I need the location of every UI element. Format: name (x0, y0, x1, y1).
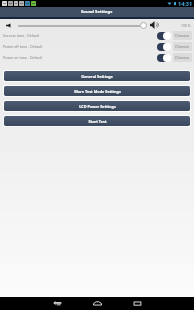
staticText: 14:31 (178, 0, 193, 7)
staticText: Start Test (88, 119, 107, 124)
staticText: Choose (175, 44, 190, 49)
staticText: LCD Power Settings (79, 104, 116, 109)
button[interactable]: LCD Power Settings (4, 101, 190, 111)
button[interactable]: Toggle (157, 43, 171, 51)
staticText: Sound Settings (81, 9, 113, 15)
staticText: Choose (175, 33, 190, 38)
button[interactable]: Choose (173, 53, 192, 62)
staticText: More Test Mode Settings (74, 89, 121, 94)
button[interactable]: Toggle (157, 32, 171, 40)
staticText: Choose (175, 55, 190, 60)
button[interactable]: General Settings (4, 71, 190, 81)
button[interactable]: Choose (173, 31, 192, 40)
button[interactable]: Toggle (157, 54, 171, 62)
button[interactable]: Back (50, 297, 64, 310)
button[interactable]: Recents (130, 297, 144, 310)
button[interactable]: Home (90, 297, 104, 310)
button[interactable]: More Test Mode Settings (4, 86, 190, 96)
staticText: Power on tone - Default (3, 55, 42, 60)
button[interactable]: Choose (173, 42, 192, 51)
button[interactable]: Start Test (4, 116, 190, 126)
staticText: Success tone - Default (3, 33, 40, 38)
staticText: Power off tone - Default (3, 44, 43, 49)
staticText: 100 % (181, 23, 191, 28)
staticText: General Settings (81, 74, 113, 79)
